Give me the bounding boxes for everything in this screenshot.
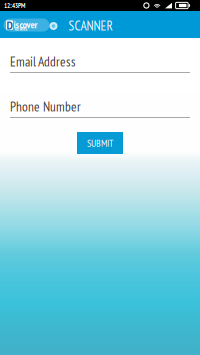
staticText: iscover xyxy=(13,18,37,31)
button[interactable]: SUBMIT xyxy=(77,132,123,154)
staticText: D xyxy=(6,17,12,33)
staticText: Email Address xyxy=(10,53,76,70)
staticText: 12:43PM xyxy=(4,1,25,10)
staticText: SCANNER xyxy=(68,17,112,34)
staticText: SUBMIT xyxy=(87,136,113,149)
staticText: Phone Number xyxy=(10,98,81,115)
staticText: NETWORK xyxy=(14,27,27,32)
